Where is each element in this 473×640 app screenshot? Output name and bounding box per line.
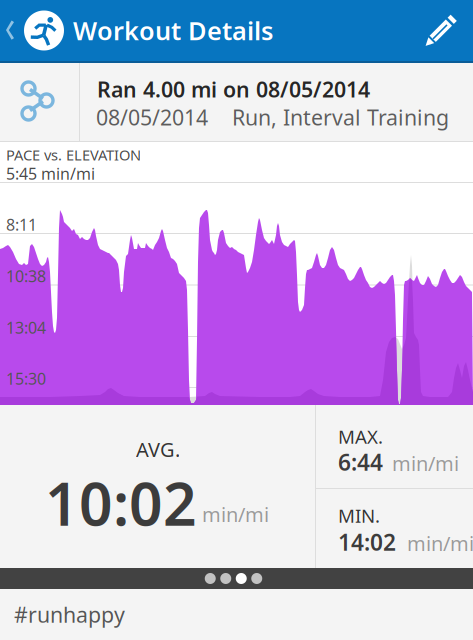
staticText: MAX. [338,424,383,449]
staticText: Ran 4.00 mi on 08/05/2014 [97,75,370,103]
button[interactable]: Back [0,0,64,61]
button[interactable]: AVG. [0,405,315,568]
button[interactable]: Ran 4.00 mi on 08/05/2014 [0,63,473,141]
staticText: Run, Interval Training [232,103,449,131]
button[interactable]: MIN. [316,489,473,566]
staticText: AVG. [136,436,180,463]
staticText: #runhappy [14,600,125,629]
button[interactable]: Edit [425,0,473,60]
staticText: min/mi [202,501,269,528]
button[interactable]: Workout Details [64,0,273,61]
staticText: 8:11 [6,214,37,235]
staticText: 15:30 [6,368,46,389]
staticText: min/mi [407,530,473,557]
staticText: PACE vs. ELEVATION [6,145,141,164]
staticText: Workout Details [73,14,273,47]
staticText: 5:45 min/mi [6,163,95,184]
staticText: MIN. [338,503,380,528]
staticText: 6:44 [338,447,383,477]
button[interactable]: MAX. [316,405,473,488]
staticText: 13:04 [6,317,46,338]
staticText: 10:02 [45,464,197,542]
staticText: 14:02 [338,527,396,557]
staticText: min/mi [392,450,459,477]
staticText: 10:38 [6,265,46,287]
staticText: 08/05/2014 [96,103,208,131]
